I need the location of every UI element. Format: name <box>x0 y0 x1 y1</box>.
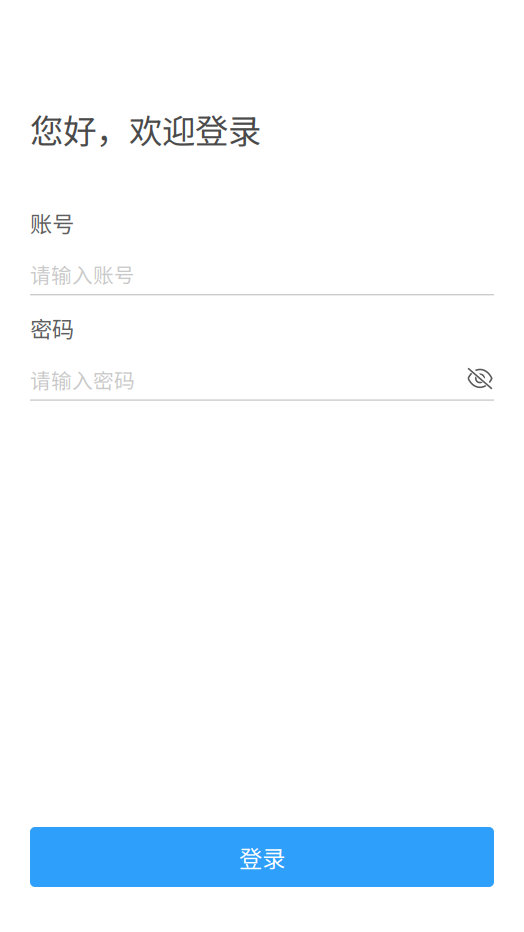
staticText: 请输入账号 <box>30 259 135 289</box>
staticText: 密码 <box>30 312 74 344</box>
staticText: 登录 <box>239 840 285 874</box>
staticText: 您好，欢迎登录 <box>30 105 261 153</box>
button[interactable]: 请输入账号 <box>30 263 494 285</box>
staticText: 请输入密码 <box>30 364 135 394</box>
button[interactable]: Show password <box>460 367 494 391</box>
button[interactable]: 请输入密码 <box>30 368 460 390</box>
button[interactable]: 登录 <box>30 827 494 887</box>
staticText: 账号 <box>30 206 74 238</box>
